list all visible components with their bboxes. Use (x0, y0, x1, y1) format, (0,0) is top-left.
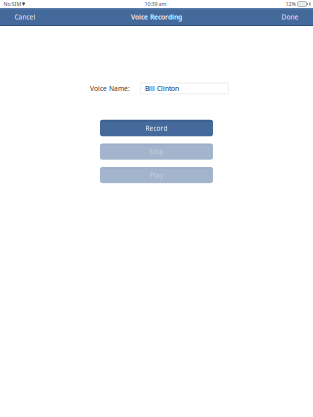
staticText: 10:39 am (144, 0, 166, 8)
button[interactable]: Play (100, 167, 213, 183)
button[interactable]: Cancel (11, 9, 38, 25)
staticText: Stop (149, 147, 163, 156)
button[interactable]: Stop (100, 144, 213, 160)
button[interactable]: Record (100, 120, 213, 136)
button[interactable]: Bill Clinton (140, 83, 228, 94)
staticText: 12% (286, 0, 296, 8)
staticText: No SIM (3, 0, 21, 8)
staticText: Cancel (14, 13, 35, 21)
button[interactable]: Done (278, 9, 301, 25)
staticText: Voice Recording (131, 13, 182, 21)
staticText: Record (145, 124, 167, 133)
staticText: Done (281, 13, 298, 21)
staticText: Bill Clinton (145, 84, 179, 93)
staticText: Play (150, 171, 163, 180)
staticText: Voice Name: (90, 84, 130, 93)
